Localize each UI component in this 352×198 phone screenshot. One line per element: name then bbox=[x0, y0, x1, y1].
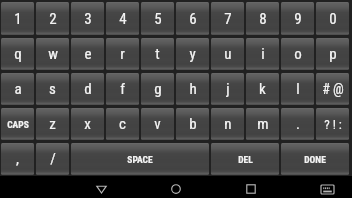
button[interactable]: z bbox=[36, 108, 69, 140]
staticText: t bbox=[155, 45, 160, 63]
staticText: q bbox=[14, 45, 22, 63]
button[interactable]: 4 bbox=[106, 2, 139, 35]
staticText: m bbox=[257, 115, 269, 133]
staticText: 4 bbox=[119, 10, 127, 28]
button[interactable]: j bbox=[211, 73, 244, 105]
button[interactable]: 5 bbox=[141, 2, 174, 35]
button[interactable]: x bbox=[71, 108, 104, 140]
staticText: . bbox=[296, 115, 300, 133]
staticText: DONE bbox=[304, 154, 326, 165]
button[interactable]: o bbox=[281, 38, 314, 70]
button[interactable]: v bbox=[141, 108, 174, 140]
button[interactable]: Back bbox=[79, 176, 123, 198]
button[interactable]: . bbox=[281, 108, 314, 140]
button[interactable]: # @ bbox=[316, 73, 349, 105]
staticText: 9 bbox=[294, 10, 302, 28]
button[interactable]: 0 bbox=[316, 2, 349, 35]
button[interactable]: s bbox=[36, 73, 69, 105]
button[interactable]: l bbox=[281, 73, 314, 105]
staticText: u bbox=[224, 45, 232, 63]
staticText: 0 bbox=[329, 10, 337, 28]
button[interactable]: d bbox=[71, 73, 104, 105]
staticText: SPACE bbox=[127, 154, 153, 165]
button[interactable]: p bbox=[316, 38, 349, 70]
staticText: 8 bbox=[259, 10, 267, 28]
staticText: ? ! : bbox=[324, 117, 342, 132]
staticText: 6 bbox=[189, 10, 197, 28]
button[interactable]: CAPS bbox=[1, 108, 34, 140]
staticText: e bbox=[84, 45, 92, 63]
button[interactable]: e bbox=[71, 38, 104, 70]
button[interactable]: i bbox=[246, 38, 279, 70]
staticText: b bbox=[189, 115, 197, 133]
staticText: k bbox=[259, 80, 266, 98]
staticText: CAPS bbox=[7, 119, 29, 130]
button[interactable]: w bbox=[36, 38, 69, 70]
staticText: r bbox=[120, 45, 125, 63]
button[interactable]: 9 bbox=[281, 2, 314, 35]
staticText: x bbox=[84, 115, 91, 133]
button[interactable]: DEL bbox=[211, 143, 279, 175]
button[interactable]: 7 bbox=[211, 2, 244, 35]
button[interactable]: Switch keyboard bbox=[305, 176, 349, 198]
button[interactable]: a bbox=[1, 73, 34, 105]
button[interactable]: q bbox=[1, 38, 34, 70]
button[interactable]: DONE bbox=[281, 143, 349, 175]
staticText: # @ bbox=[322, 81, 344, 97]
staticText: g bbox=[154, 80, 162, 98]
staticText: 5 bbox=[154, 10, 162, 28]
staticText: , bbox=[16, 150, 19, 168]
staticText: n bbox=[224, 115, 232, 133]
button[interactable]: r bbox=[106, 38, 139, 70]
staticText: j bbox=[226, 80, 230, 98]
staticText: z bbox=[49, 115, 56, 133]
staticText: l bbox=[296, 80, 300, 98]
staticText: v bbox=[154, 115, 161, 133]
staticText: c bbox=[119, 115, 126, 133]
button[interactable]: Recent apps bbox=[229, 176, 273, 198]
button[interactable]: c bbox=[106, 108, 139, 140]
button[interactable]: ? ! : bbox=[316, 108, 349, 140]
staticText: 3 bbox=[84, 10, 92, 28]
button[interactable]: y bbox=[176, 38, 209, 70]
staticText: 2 bbox=[49, 10, 57, 28]
button[interactable]: f bbox=[106, 73, 139, 105]
staticText: p bbox=[329, 45, 337, 63]
button[interactable]: 3 bbox=[71, 2, 104, 35]
staticText: 1 bbox=[14, 10, 22, 28]
staticText: y bbox=[189, 45, 196, 63]
button[interactable]: , bbox=[1, 143, 34, 175]
staticText: DEL bbox=[238, 154, 253, 165]
staticText: / bbox=[50, 150, 56, 168]
staticText: o bbox=[294, 45, 302, 63]
button[interactable]: SPACE bbox=[71, 143, 209, 175]
staticText: w bbox=[48, 45, 58, 63]
button[interactable]: m bbox=[246, 108, 279, 140]
staticText: h bbox=[189, 80, 197, 98]
button[interactable]: k bbox=[246, 73, 279, 105]
button[interactable]: 8 bbox=[246, 2, 279, 35]
button[interactable]: t bbox=[141, 38, 174, 70]
staticText: i bbox=[261, 45, 265, 63]
button[interactable]: 1 bbox=[1, 2, 34, 35]
staticText: d bbox=[84, 80, 92, 98]
staticText: a bbox=[14, 80, 22, 98]
button[interactable]: 6 bbox=[176, 2, 209, 35]
staticText: 7 bbox=[224, 10, 232, 28]
button[interactable]: 2 bbox=[36, 2, 69, 35]
button[interactable]: n bbox=[211, 108, 244, 140]
button[interactable]: h bbox=[176, 73, 209, 105]
button[interactable]: Home bbox=[154, 176, 198, 198]
button[interactable]: g bbox=[141, 73, 174, 105]
button[interactable]: / bbox=[36, 143, 69, 175]
staticText: s bbox=[49, 80, 56, 98]
button[interactable]: u bbox=[211, 38, 244, 70]
staticText: f bbox=[120, 80, 125, 98]
button[interactable]: b bbox=[176, 108, 209, 140]
